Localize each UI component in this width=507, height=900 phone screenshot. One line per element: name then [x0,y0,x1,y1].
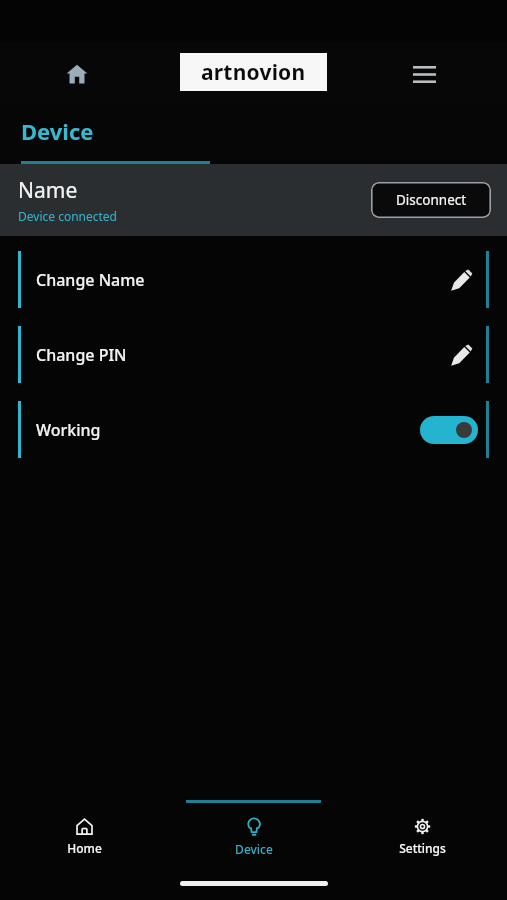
staticText: Working [36,419,101,441]
button[interactable]: Menu [402,52,446,96]
staticText: Device [21,116,94,146]
button[interactable]: Home [0,796,169,874]
staticText: Device [235,841,273,857]
button[interactable]: Device [169,796,338,874]
button[interactable]: Working toggle [420,416,478,444]
staticText: artnovion [201,58,306,87]
button[interactable]: Edit [444,263,478,297]
staticText: Settings [399,840,446,856]
staticText: Disconnect [396,191,467,209]
staticText: Change Name [36,269,145,291]
button[interactable]: artnovion [180,53,327,91]
staticText: Device connected [18,208,117,224]
button[interactable]: Settings [338,796,507,874]
button[interactable]: Change Name [0,251,507,308]
button[interactable]: Change PIN [0,326,507,383]
button[interactable]: Home [55,52,99,96]
button[interactable]: Working [0,401,507,458]
staticText: Home [67,840,102,856]
button[interactable]: Edit [444,338,478,372]
button[interactable]: Disconnect [371,182,491,218]
staticText: Change PIN [36,344,127,366]
staticText: Name [18,176,78,205]
button[interactable]: Device [0,106,210,164]
